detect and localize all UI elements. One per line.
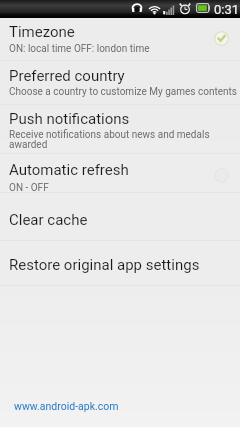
staticText: Push notifications [9, 110, 130, 128]
staticText: Automatic refresh [9, 161, 129, 179]
button[interactable]: Restore original app settings [0, 241, 240, 285]
button[interactable]: Automatic refresh [0, 154, 240, 192]
button[interactable]: Clear cache [0, 193, 240, 240]
button[interactable]: On [209, 26, 233, 50]
staticText: Restore original app settings [9, 256, 200, 274]
staticText: Choose a country to customize My games c… [9, 86, 237, 98]
staticText: Timezone [9, 23, 75, 41]
staticText: Receive notifications about news and med… [9, 129, 210, 150]
staticText: 0:31 [214, 2, 240, 17]
button[interactable]: Preferred country [0, 61, 240, 104]
button[interactable]: Timezone [0, 18, 240, 60]
staticText: Preferred country [9, 67, 125, 85]
staticText: Clear cache [9, 211, 88, 229]
button[interactable]: www.android-apk.com [14, 400, 119, 412]
staticText: ON: local time OFF: london time [9, 43, 150, 55]
button[interactable]: Push notifications [0, 105, 240, 153]
staticText: ON - OFF [9, 182, 49, 194]
